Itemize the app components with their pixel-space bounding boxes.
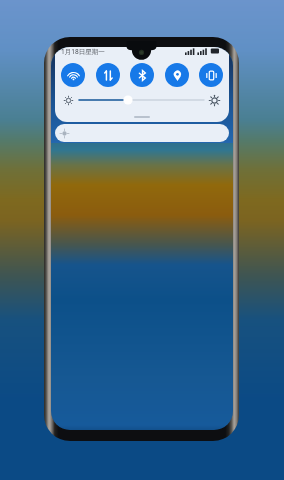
button[interactable]: Media output xyxy=(55,124,229,142)
button[interactable]: Mobile data xyxy=(96,63,120,87)
button[interactable]: Location xyxy=(165,63,189,87)
button[interactable]: Bluetooth xyxy=(130,63,154,87)
button[interactable]: Vibrate xyxy=(199,63,223,87)
staticText: 1月18日星期一 xyxy=(61,47,105,56)
button[interactable]: Wi-Fi xyxy=(61,63,85,87)
